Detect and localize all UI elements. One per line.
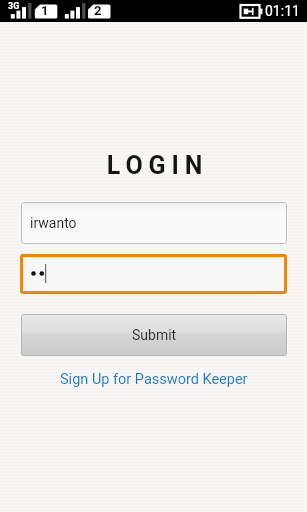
button[interactable]: Submit [21, 314, 287, 356]
button[interactable]: Sign Up for Password Keeper [0, 371, 307, 388]
staticText: Submit [132, 327, 177, 343]
staticText: LOGIN [4, 151, 307, 180]
staticText: Sign Up for Password Keeper [60, 371, 248, 388]
button[interactable]: irwanto [21, 202, 287, 244]
staticText: 3G [8, 1, 20, 12]
staticText: 1 [41, 3, 49, 18]
button[interactable]: Password [20, 254, 287, 294]
other: Battery charging [240, 5, 263, 18]
staticText: 01:11 [265, 3, 300, 19]
staticText: irwanto [30, 215, 77, 231]
staticText: 2 [94, 3, 102, 18]
